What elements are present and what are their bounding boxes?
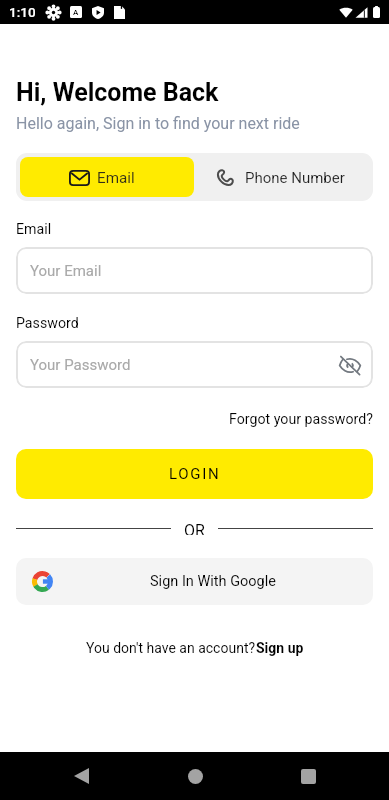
staticText: Hello again, Sign in to find your next r…: [16, 114, 300, 133]
staticText: Email: [16, 221, 52, 238]
staticText: A: [73, 8, 79, 17]
button[interactable]: Phone Number: [194, 157, 369, 197]
staticText: Password: [16, 315, 79, 332]
button[interactable]: Back: [61, 756, 101, 796]
staticText: 1:10: [9, 4, 36, 20]
staticText: Forgot your password?: [229, 411, 373, 428]
button[interactable]: Email: [20, 157, 194, 197]
staticText: Sign up: [256, 640, 304, 656]
staticText: You don't have an account?: [86, 640, 256, 656]
staticText: Sign In With Google: [150, 573, 276, 590]
staticText: Your Email: [30, 262, 102, 280]
button[interactable]: Sign up: [256, 640, 304, 656]
button[interactable]: Home: [175, 756, 215, 796]
button[interactable]: LOGIN: [16, 449, 373, 499]
button[interactable]: Sign In With Google: [16, 558, 373, 605]
staticText: OR: [184, 521, 205, 535]
staticText: Your Password: [30, 356, 131, 374]
button[interactable]: Your Password: [16, 341, 373, 388]
staticText: Phone Number: [245, 169, 345, 187]
staticText: Hi, Welcome Back: [16, 78, 219, 107]
staticText: Email: [97, 169, 135, 187]
button[interactable]: Show password: [337, 352, 363, 378]
staticText: LOGIN: [169, 465, 221, 483]
button[interactable]: Forgot your password?: [229, 411, 373, 428]
button[interactable]: Recent apps: [288, 756, 328, 796]
button[interactable]: Your Email: [16, 247, 373, 294]
